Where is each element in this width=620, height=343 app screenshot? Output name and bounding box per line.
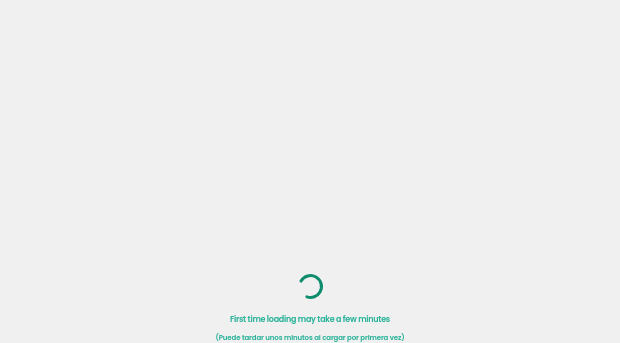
staticText: (Puede tardar unos minutos al cargar por… (215, 333, 405, 343)
staticText: First time loading may take a few minute… (230, 314, 390, 325)
other: Loading (298, 274, 323, 299)
